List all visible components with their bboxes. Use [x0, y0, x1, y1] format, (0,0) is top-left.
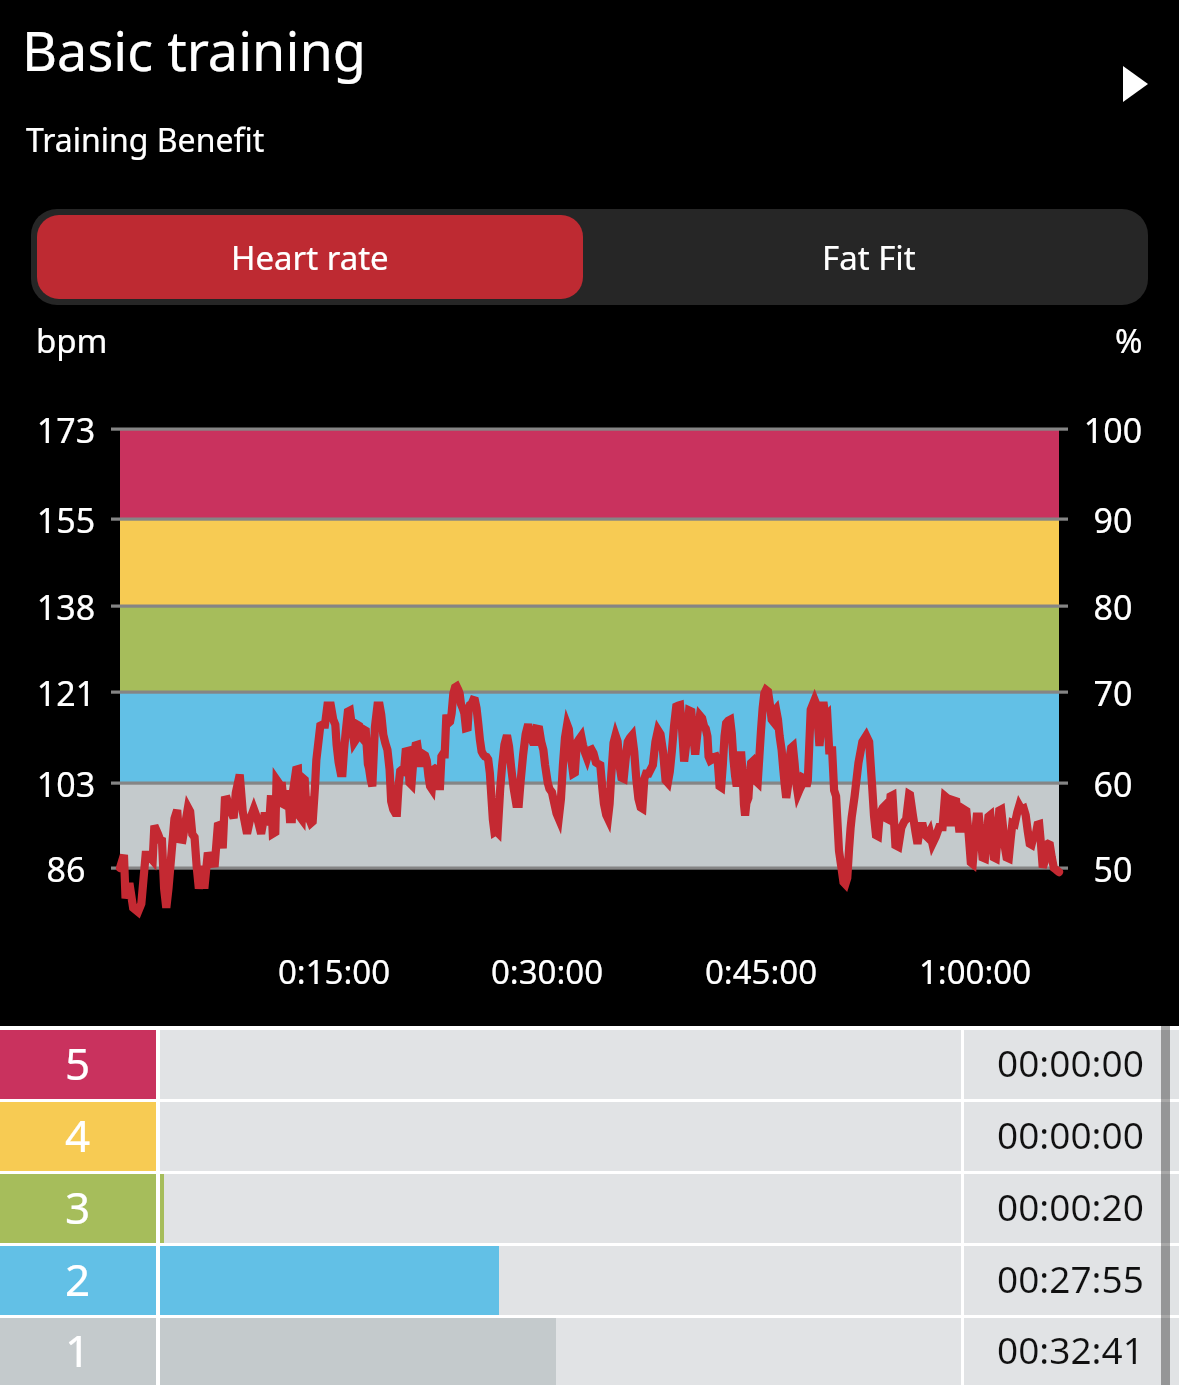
- staticText: 00:32:41: [997, 1324, 1144, 1374]
- button[interactable]: Fat Fit: [589, 209, 1148, 305]
- staticText: 86: [0, 846, 132, 892]
- staticText: 0:15:00: [214, 949, 454, 994]
- staticText: 103: [0, 761, 132, 807]
- staticText: Training Benefit: [26, 118, 265, 162]
- button[interactable]: 4: [0, 1102, 1179, 1171]
- staticText: 00:00:20: [997, 1181, 1144, 1231]
- staticText: 3: [65, 1177, 91, 1237]
- staticText: 0:45:00: [641, 949, 881, 994]
- button[interactable]: 3: [0, 1174, 1179, 1243]
- staticText: 2: [65, 1249, 91, 1309]
- staticText: 00:27:55: [997, 1253, 1144, 1303]
- staticText: 0:30:00: [427, 949, 667, 994]
- staticText: 60: [1047, 761, 1179, 807]
- staticText: 00:00:00: [997, 1109, 1144, 1159]
- staticText: 4: [65, 1105, 91, 1165]
- staticText: 90: [1047, 497, 1179, 543]
- staticText: 100: [1047, 407, 1179, 453]
- staticText: %: [1115, 318, 1143, 363]
- staticText: 70: [1047, 670, 1179, 716]
- staticText: Basic training: [22, 13, 366, 87]
- staticText: Heart rate: [231, 235, 389, 280]
- staticText: 5: [65, 1033, 91, 1093]
- staticText: 155: [0, 497, 132, 543]
- staticText: 1:00:00: [855, 949, 1095, 994]
- staticText: bpm: [36, 318, 108, 363]
- staticText: 173: [0, 407, 132, 453]
- staticText: 50: [1047, 846, 1179, 892]
- button[interactable]: Heart rate: [37, 215, 583, 299]
- button[interactable]: 1: [0, 1318, 1179, 1385]
- staticText: Fat Fit: [822, 235, 916, 280]
- button[interactable]: Play: [1104, 53, 1166, 115]
- staticText: 1: [65, 1320, 91, 1380]
- staticText: 00:00:00: [997, 1037, 1144, 1087]
- staticText: 121: [0, 670, 132, 716]
- staticText: 138: [0, 584, 132, 630]
- staticText: 80: [1047, 584, 1179, 630]
- button[interactable]: 5: [0, 1030, 1179, 1099]
- button[interactable]: 2: [0, 1246, 1179, 1315]
